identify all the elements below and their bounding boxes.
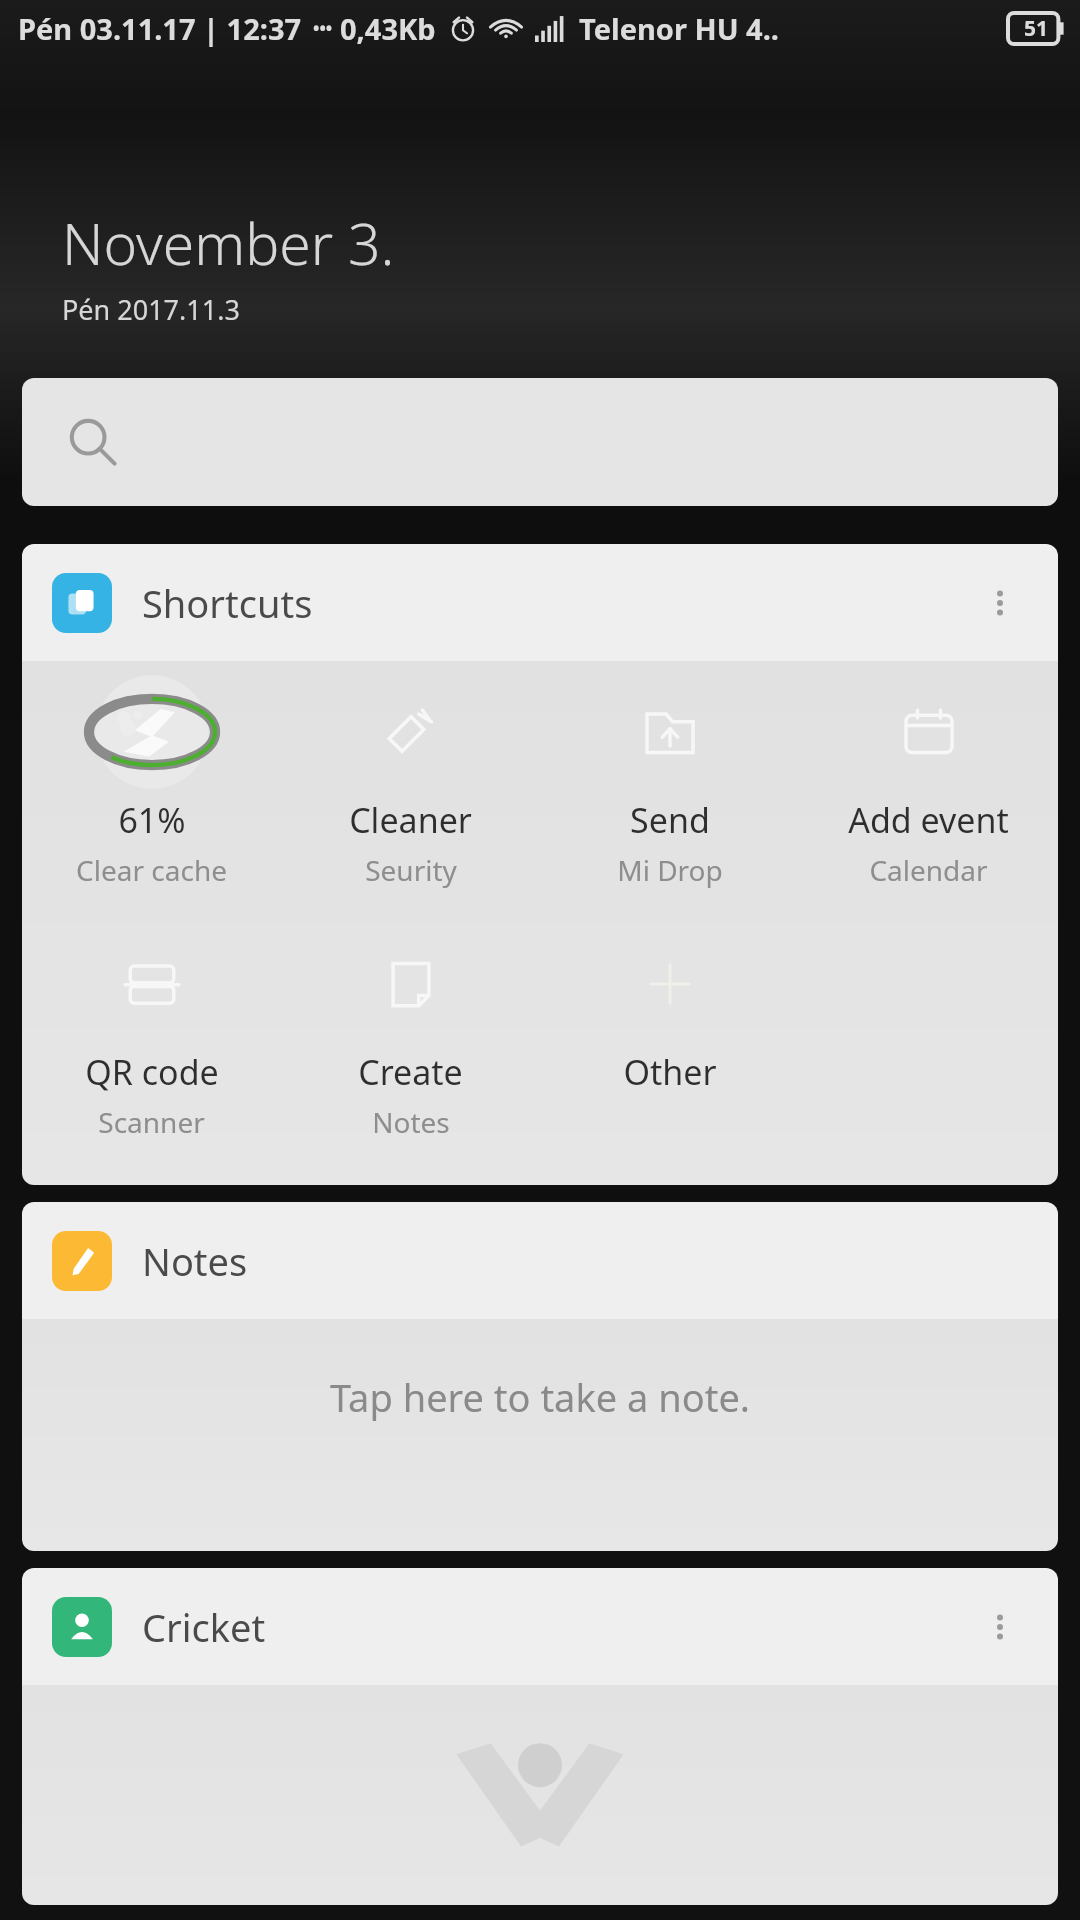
staticText: Shortcuts [142,577,313,629]
staticText: Calendar [869,851,988,889]
staticText: Notes [142,1235,248,1287]
staticText: Create [358,1049,463,1095]
button[interactable]: Notes [22,1202,1058,1319]
button[interactable]: Shortcuts [22,544,1058,661]
button[interactable]: Cricket [22,1568,1058,1685]
staticText: Telenor HU 4.. [579,9,779,48]
staticText: 51 [1024,14,1049,43]
button[interactable]: Search [22,378,1058,506]
button[interactable]: Send [540,687,799,893]
staticText: Cricket [142,1601,266,1653]
staticText: Pén 2017.11.3 [62,291,240,328]
staticText: Pén 03.11.17 | 12:37 [18,9,302,48]
staticText: Add event [848,797,1009,843]
staticText: QR code [85,1049,219,1095]
button[interactable]: More options [972,575,1028,631]
staticText: 61% [118,797,186,843]
staticText: Notes [372,1103,450,1141]
staticText: November 3. [62,204,395,282]
staticText: Scanner [98,1103,205,1141]
button[interactable]: 61% [22,687,281,893]
button[interactable]: QR code [22,939,281,1145]
button[interactable]: More options [972,1599,1028,1655]
staticText: Other [623,1049,717,1095]
button[interactable]: Cleaner [281,687,540,893]
button[interactable] [22,1685,1058,1905]
staticText: Tap here to take a note. [330,1371,751,1423]
staticText: Cleaner [349,797,472,843]
staticText: Mi Drop [617,851,723,889]
button[interactable]: Create [281,939,540,1145]
staticText: 0,43Kb [340,9,436,48]
staticText: Send [630,797,710,843]
button[interactable]: Other [540,939,799,1099]
staticText: Seurity [365,851,457,889]
staticText: ••• [313,17,333,40]
button[interactable]: Add event [799,687,1058,893]
button[interactable]: Tap here to take a note. [22,1319,1058,1551]
staticText: Clear cache [76,851,227,889]
